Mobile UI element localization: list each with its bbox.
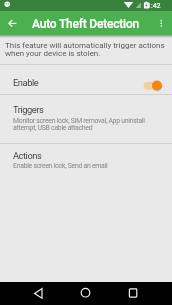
staticText: when your device is stolen. bbox=[5, 49, 101, 58]
staticText: This feature will automatically trigger … bbox=[5, 41, 165, 50]
button[interactable] bbox=[152, 11, 172, 35]
staticText: attempt, USB cable attached bbox=[13, 124, 93, 132]
staticText: Monitor screen lock, SIM removal, App un… bbox=[13, 117, 145, 125]
staticText: Triggers bbox=[13, 104, 44, 115]
button[interactable]: Actions bbox=[0, 144, 172, 180]
button[interactable] bbox=[28, 283, 48, 303]
staticText: Auto Theft Detection bbox=[32, 17, 140, 31]
staticText: 1:42 bbox=[147, 2, 161, 10]
button[interactable] bbox=[123, 283, 143, 303]
button[interactable]: Enable bbox=[0, 65, 172, 94]
staticText: Actions bbox=[13, 150, 42, 161]
button[interactable]: Triggers bbox=[0, 95, 172, 143]
staticText: Enable bbox=[13, 77, 39, 88]
button[interactable] bbox=[76, 283, 96, 303]
staticText: Enable screen lock, Send an email bbox=[13, 162, 108, 170]
button[interactable] bbox=[0, 11, 24, 35]
